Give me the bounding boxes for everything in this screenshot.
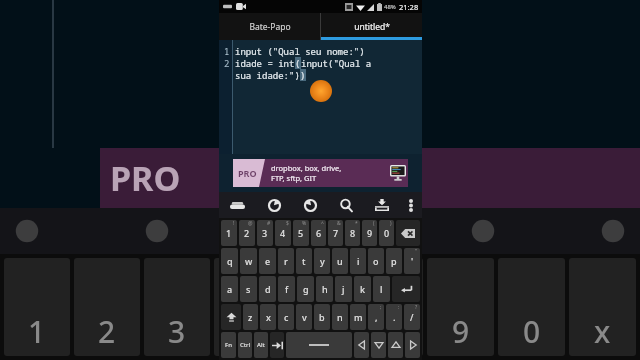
- button[interactable]: y: [314, 248, 330, 274]
- button[interactable]: j: [335, 276, 352, 302]
- button[interactable]: More options: [400, 192, 422, 218]
- button[interactable]: ?: [404, 304, 420, 330]
- button[interactable]: Undo: [256, 192, 292, 218]
- staticText: Bate-Papo: [249, 21, 291, 33]
- button[interactable]: x: [260, 304, 276, 330]
- button[interactable]: a: [221, 276, 238, 302]
- button[interactable]: Search: [328, 192, 364, 218]
- button[interactable]: Alt: [254, 332, 268, 358]
- button[interactable]: bksp: [396, 220, 420, 246]
- staticText: ): [300, 69, 306, 81]
- button[interactable]: Redo: [292, 192, 328, 218]
- button[interactable]: untitled*: [321, 13, 422, 40]
- staticText: sua idade:"): [235, 69, 300, 81]
- staticText: 1: [28, 311, 46, 352]
- staticText: l: [380, 283, 383, 295]
- staticText: *: [355, 220, 358, 227]
- staticText: w: [245, 255, 253, 267]
- button[interactable]: b: [314, 304, 330, 330]
- button[interactable]: space: [286, 332, 352, 358]
- staticText: #: [267, 220, 271, 227]
- button[interactable]: $: [275, 220, 291, 246]
- button[interactable]: h: [316, 276, 333, 302]
- button[interactable]: t: [296, 248, 312, 274]
- button[interactable]: (: [362, 220, 377, 246]
- button[interactable]: e: [259, 248, 276, 274]
- staticText: 5: [298, 227, 304, 239]
- button[interactable]: Ctrl: [238, 332, 252, 358]
- staticText: 4: [239, 311, 257, 352]
- staticText: f: [285, 283, 289, 295]
- staticText: Ctrl: [240, 341, 251, 349]
- button[interactable]: w: [240, 248, 257, 274]
- button[interactable]: r: [278, 248, 294, 274]
- button[interactable]: f: [278, 276, 295, 302]
- staticText: y: [320, 255, 325, 267]
- staticText: (: [373, 220, 375, 227]
- staticText: 9: [452, 311, 470, 352]
- button[interactable]: Bate-Papo: [219, 13, 320, 40]
- button[interactable]: &: [328, 220, 343, 246]
- button[interactable]: ): [379, 220, 394, 246]
- button[interactable]: down: [371, 332, 386, 358]
- button[interactable]: ": [404, 248, 420, 274]
- staticText: x: [266, 311, 271, 323]
- staticText: ;: [380, 304, 382, 311]
- button[interactable]: Fn: [221, 332, 236, 358]
- staticText: Alt: [257, 341, 265, 349]
- button[interactable]: up: [388, 332, 403, 358]
- button[interactable]: Upload: [364, 192, 400, 218]
- button[interactable]: %: [293, 220, 309, 246]
- button[interactable]: ;: [368, 304, 384, 330]
- button[interactable]: c: [278, 304, 294, 330]
- staticText: .: [393, 311, 396, 323]
- button[interactable]: i: [350, 248, 366, 274]
- button[interactable]: l: [373, 276, 390, 302]
- button[interactable]: @: [239, 220, 255, 246]
- button[interactable]: right: [405, 332, 420, 358]
- staticText: d: [265, 283, 271, 295]
- staticText: idade = int: [235, 57, 295, 69]
- button[interactable]: o: [368, 248, 384, 274]
- staticText: o: [373, 255, 379, 267]
- staticText: 48%: [384, 3, 396, 11]
- button[interactable]: shift: [221, 304, 241, 330]
- button[interactable]: !: [221, 220, 237, 246]
- button[interactable]: u: [332, 248, 348, 274]
- staticText: z: [248, 311, 253, 323]
- button[interactable]: PRO: [233, 159, 408, 187]
- staticText: 0: [384, 227, 390, 239]
- button[interactable]: #: [257, 220, 273, 246]
- button[interactable]: m: [350, 304, 366, 330]
- button[interactable]: Save: [219, 192, 256, 218]
- staticText: 4: [280, 227, 286, 239]
- button[interactable]: d: [259, 276, 276, 302]
- button[interactable]: *: [345, 220, 360, 246]
- button[interactable]: z: [243, 304, 258, 330]
- button[interactable]: tab: [270, 332, 284, 358]
- staticText: p: [391, 255, 397, 267]
- button[interactable]: q: [221, 248, 238, 274]
- staticText: &: [337, 220, 341, 227]
- button[interactable]: Run: [310, 80, 332, 102]
- staticText: x: [594, 311, 611, 352]
- staticText: !: [233, 220, 235, 227]
- button[interactable]: p: [386, 248, 402, 274]
- staticText: @: [248, 220, 253, 227]
- staticText: PRO: [238, 167, 257, 179]
- staticText: i: [357, 255, 360, 267]
- button[interactable]: enter: [392, 276, 420, 302]
- button[interactable]: v: [296, 304, 312, 330]
- button[interactable]: ^: [311, 220, 326, 246]
- button[interactable]: k: [354, 276, 371, 302]
- button[interactable]: g: [297, 276, 314, 302]
- button[interactable]: left: [354, 332, 369, 358]
- staticText: b: [319, 311, 325, 323]
- button[interactable]: n: [332, 304, 348, 330]
- staticText: n: [337, 311, 343, 323]
- staticText: q: [227, 255, 233, 267]
- button[interactable]: :: [386, 304, 402, 330]
- staticText: $: [286, 220, 289, 227]
- staticText: dropbox, box, drive,: [271, 163, 342, 173]
- button[interactable]: s: [240, 276, 257, 302]
